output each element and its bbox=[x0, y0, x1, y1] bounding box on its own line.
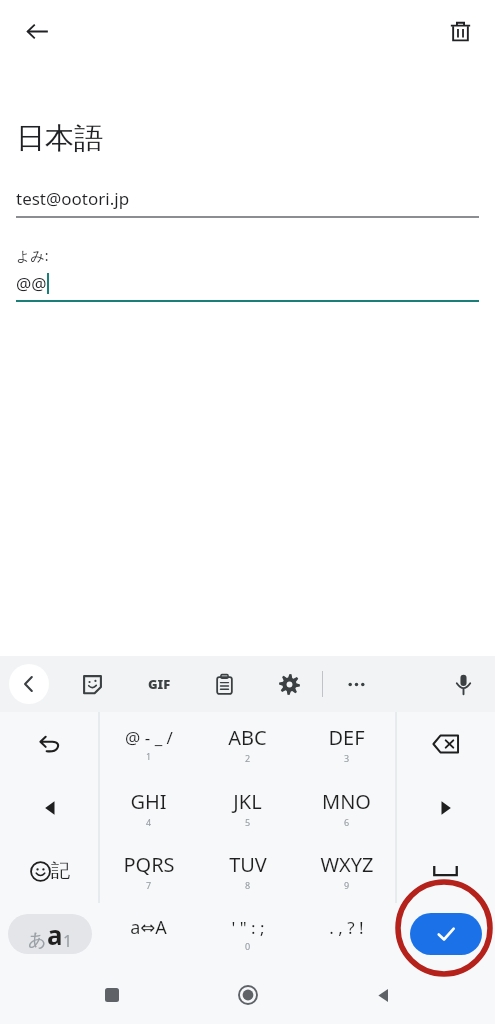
button[interactable]: Recents bbox=[88, 971, 136, 1019]
staticText: よみ: bbox=[16, 246, 49, 265]
staticText: 0 bbox=[245, 940, 251, 952]
button[interactable]: . , ? ! bbox=[297, 902, 396, 965]
button[interactable]: Key bbox=[0, 776, 99, 839]
staticText: ABC bbox=[228, 724, 267, 751]
button[interactable]: GHI bbox=[99, 776, 198, 839]
button[interactable]: Key bbox=[0, 902, 99, 965]
button[interactable]: Voice input bbox=[445, 666, 481, 702]
button[interactable]: More options bbox=[338, 666, 374, 702]
button[interactable]: DEF bbox=[297, 712, 396, 776]
staticText: ' " : ; bbox=[231, 916, 265, 939]
staticText: 1 bbox=[146, 750, 152, 762]
button[interactable]: JKL bbox=[198, 776, 297, 839]
staticText: 記 bbox=[51, 859, 70, 883]
staticText: 日本語 bbox=[16, 120, 103, 157]
button[interactable]: Key bbox=[396, 776, 495, 839]
button[interactable]: a⇔A bbox=[99, 902, 198, 965]
button[interactable]: あ bbox=[8, 914, 92, 954]
staticText: GHI bbox=[130, 788, 167, 815]
button[interactable]: Clipboard bbox=[206, 666, 242, 702]
button[interactable]: Back bbox=[359, 971, 407, 1019]
staticText: MNO bbox=[322, 788, 371, 815]
staticText: GIF bbox=[148, 675, 171, 693]
staticText: PQRS bbox=[123, 851, 175, 878]
staticText: a bbox=[47, 917, 63, 952]
button[interactable]: ABC bbox=[198, 712, 297, 776]
staticText: 1 bbox=[63, 930, 73, 952]
button[interactable]: Key bbox=[396, 839, 495, 902]
button[interactable]: Collapse toolbar bbox=[9, 664, 49, 704]
button[interactable]: Back bbox=[14, 8, 60, 54]
button[interactable]: Key bbox=[396, 902, 495, 965]
button[interactable]: @ - _ / bbox=[99, 712, 198, 776]
staticText: 2 bbox=[245, 752, 251, 764]
staticText: DEF bbox=[328, 724, 365, 751]
button[interactable]: Settings bbox=[271, 666, 307, 702]
staticText: @ - _ / bbox=[125, 726, 173, 749]
button[interactable]: PQRS bbox=[99, 839, 198, 902]
button[interactable]: Home bbox=[224, 971, 272, 1019]
staticText: 9 bbox=[344, 879, 350, 891]
staticText: TUV bbox=[229, 851, 267, 878]
button[interactable]: MNO bbox=[297, 776, 396, 839]
staticText: WXYZ bbox=[320, 851, 374, 878]
staticText: あ bbox=[28, 929, 47, 952]
button[interactable]: TUV bbox=[198, 839, 297, 902]
button[interactable]: Key bbox=[396, 712, 495, 776]
button[interactable]: GIF bbox=[141, 666, 177, 702]
staticText: 5 bbox=[245, 816, 251, 828]
staticText: 7 bbox=[146, 879, 152, 891]
button[interactable]: WXYZ bbox=[297, 839, 396, 902]
staticText: 3 bbox=[344, 752, 350, 764]
staticText: 6 bbox=[344, 816, 350, 828]
staticText: . , ? ! bbox=[329, 916, 364, 939]
button[interactable]: Key bbox=[0, 839, 99, 902]
staticText: @@ bbox=[16, 272, 47, 295]
staticText: test@ootori.jp bbox=[16, 187, 130, 210]
button[interactable]: Stickers bbox=[74, 666, 110, 702]
button[interactable]: Confirm bbox=[410, 913, 482, 955]
button[interactable]: Key bbox=[0, 712, 99, 776]
staticText: JKL bbox=[233, 788, 262, 815]
staticText: 8 bbox=[245, 879, 251, 891]
button[interactable]: Delete bbox=[437, 8, 483, 54]
button[interactable]: ' " : ; bbox=[198, 902, 297, 965]
staticText: 4 bbox=[146, 816, 152, 828]
staticText: a⇔A bbox=[130, 915, 167, 940]
